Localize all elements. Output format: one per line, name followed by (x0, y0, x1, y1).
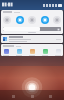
button[interactable]: App one (3, 49, 9, 56)
button[interactable]: App five (55, 49, 61, 56)
button[interactable]: Bluetooth (16, 16, 24, 24)
button[interactable]: Auto-rotate (53, 16, 61, 24)
button[interactable]: Recents (46, 92, 55, 100)
button[interactable]: App three (29, 49, 35, 56)
button[interactable]: App four (42, 49, 48, 56)
button[interactable]: Brightness (3, 26, 61, 31)
button[interactable] (1, 35, 63, 43)
button[interactable]: Flashlight (41, 16, 49, 24)
button[interactable]: Wi-Fi (3, 16, 11, 24)
button[interactable]: Do not disturb (28, 16, 36, 24)
button[interactable]: Home (28, 92, 37, 100)
button[interactable]: App two (16, 49, 22, 56)
button[interactable]: Back (9, 92, 18, 100)
